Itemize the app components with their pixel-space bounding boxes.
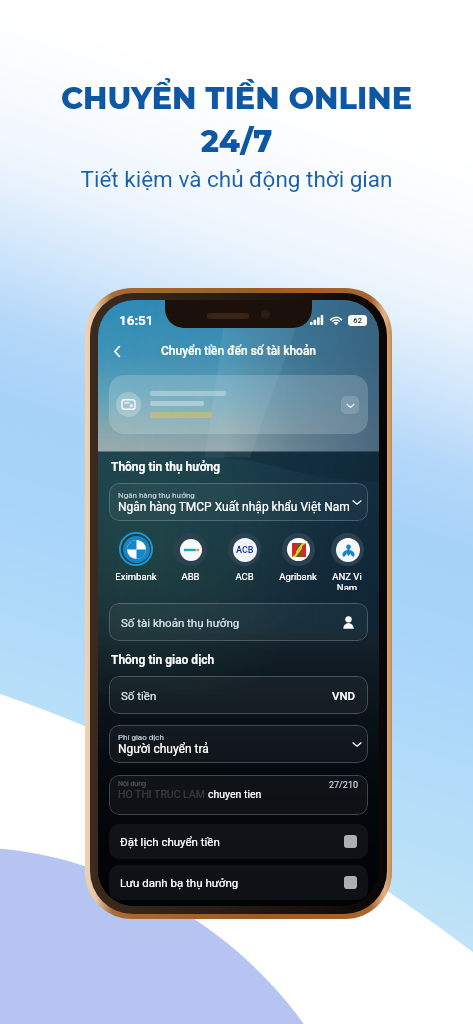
staticText: Nội dung (118, 780, 147, 788)
button[interactable]: Nội dung (109, 775, 368, 815)
button[interactable]: Ngân hàng thụ hưởng (109, 483, 368, 521)
button[interactable]: Back (107, 342, 127, 360)
button[interactable]: Lưu danh bạ thụ hưởng (109, 865, 368, 900)
button[interactable]: ACB (217, 532, 271, 582)
staticText: Eximbank (115, 571, 157, 582)
staticText: Phí giao dịch (118, 733, 164, 742)
staticText: Lưu danh bạ thụ hưởng (120, 876, 239, 889)
staticText: VND (332, 689, 356, 702)
staticText: Agribank (279, 571, 317, 582)
staticText: Số tài khoản thụ hưởng (121, 616, 240, 629)
button[interactable]: Số tiền (109, 676, 368, 714)
button[interactable]: Số tài khoản thụ hưởng (109, 603, 368, 641)
button[interactable]: Agribank (271, 532, 325, 582)
staticText: Người chuyển trả (118, 742, 209, 756)
staticText: Chuyển tiền đến số tài khoản (161, 344, 317, 358)
staticText: Thông tin thụ hưởng (111, 460, 221, 474)
staticText: ACB (236, 545, 254, 556)
button[interactable]: Phí giao dịch (109, 725, 368, 763)
staticText: 24/7 (0, 123, 473, 160)
button[interactable]: ANZ Vi Nam (325, 532, 368, 590)
staticText: 16:51 (119, 312, 154, 328)
staticText: 27/210 (329, 780, 359, 791)
staticText: Đặt lịch chuyển tiền (120, 835, 220, 848)
staticText: ACB (235, 571, 254, 582)
button[interactable] (109, 375, 368, 434)
staticText: CHUYỂN TIỀN ONLINE (0, 80, 473, 117)
button[interactable]: Eximbank (109, 532, 163, 582)
staticText: Ngân hàng thụ hưởng (118, 491, 195, 500)
staticText: ANZ Vi Nam (332, 571, 362, 590)
staticText: Thông tin giao dịch (111, 653, 215, 667)
staticText: Số tiền (121, 689, 157, 702)
staticText: Tiết kiệm và chủ động thời gian (0, 166, 473, 192)
staticText: Ngân hàng TMCP Xuất nhập khẩu Việt Nam (118, 500, 350, 514)
staticText: HO THI TRUC LAM (118, 788, 208, 800)
button[interactable]: ABB (163, 532, 217, 582)
button[interactable]: Đặt lịch chuyển tiền (109, 824, 368, 859)
staticText: ABB (181, 571, 200, 582)
staticText: chuyen tien (208, 788, 262, 800)
staticText: 62 (353, 316, 363, 325)
other: Pick contact (341, 615, 356, 630)
